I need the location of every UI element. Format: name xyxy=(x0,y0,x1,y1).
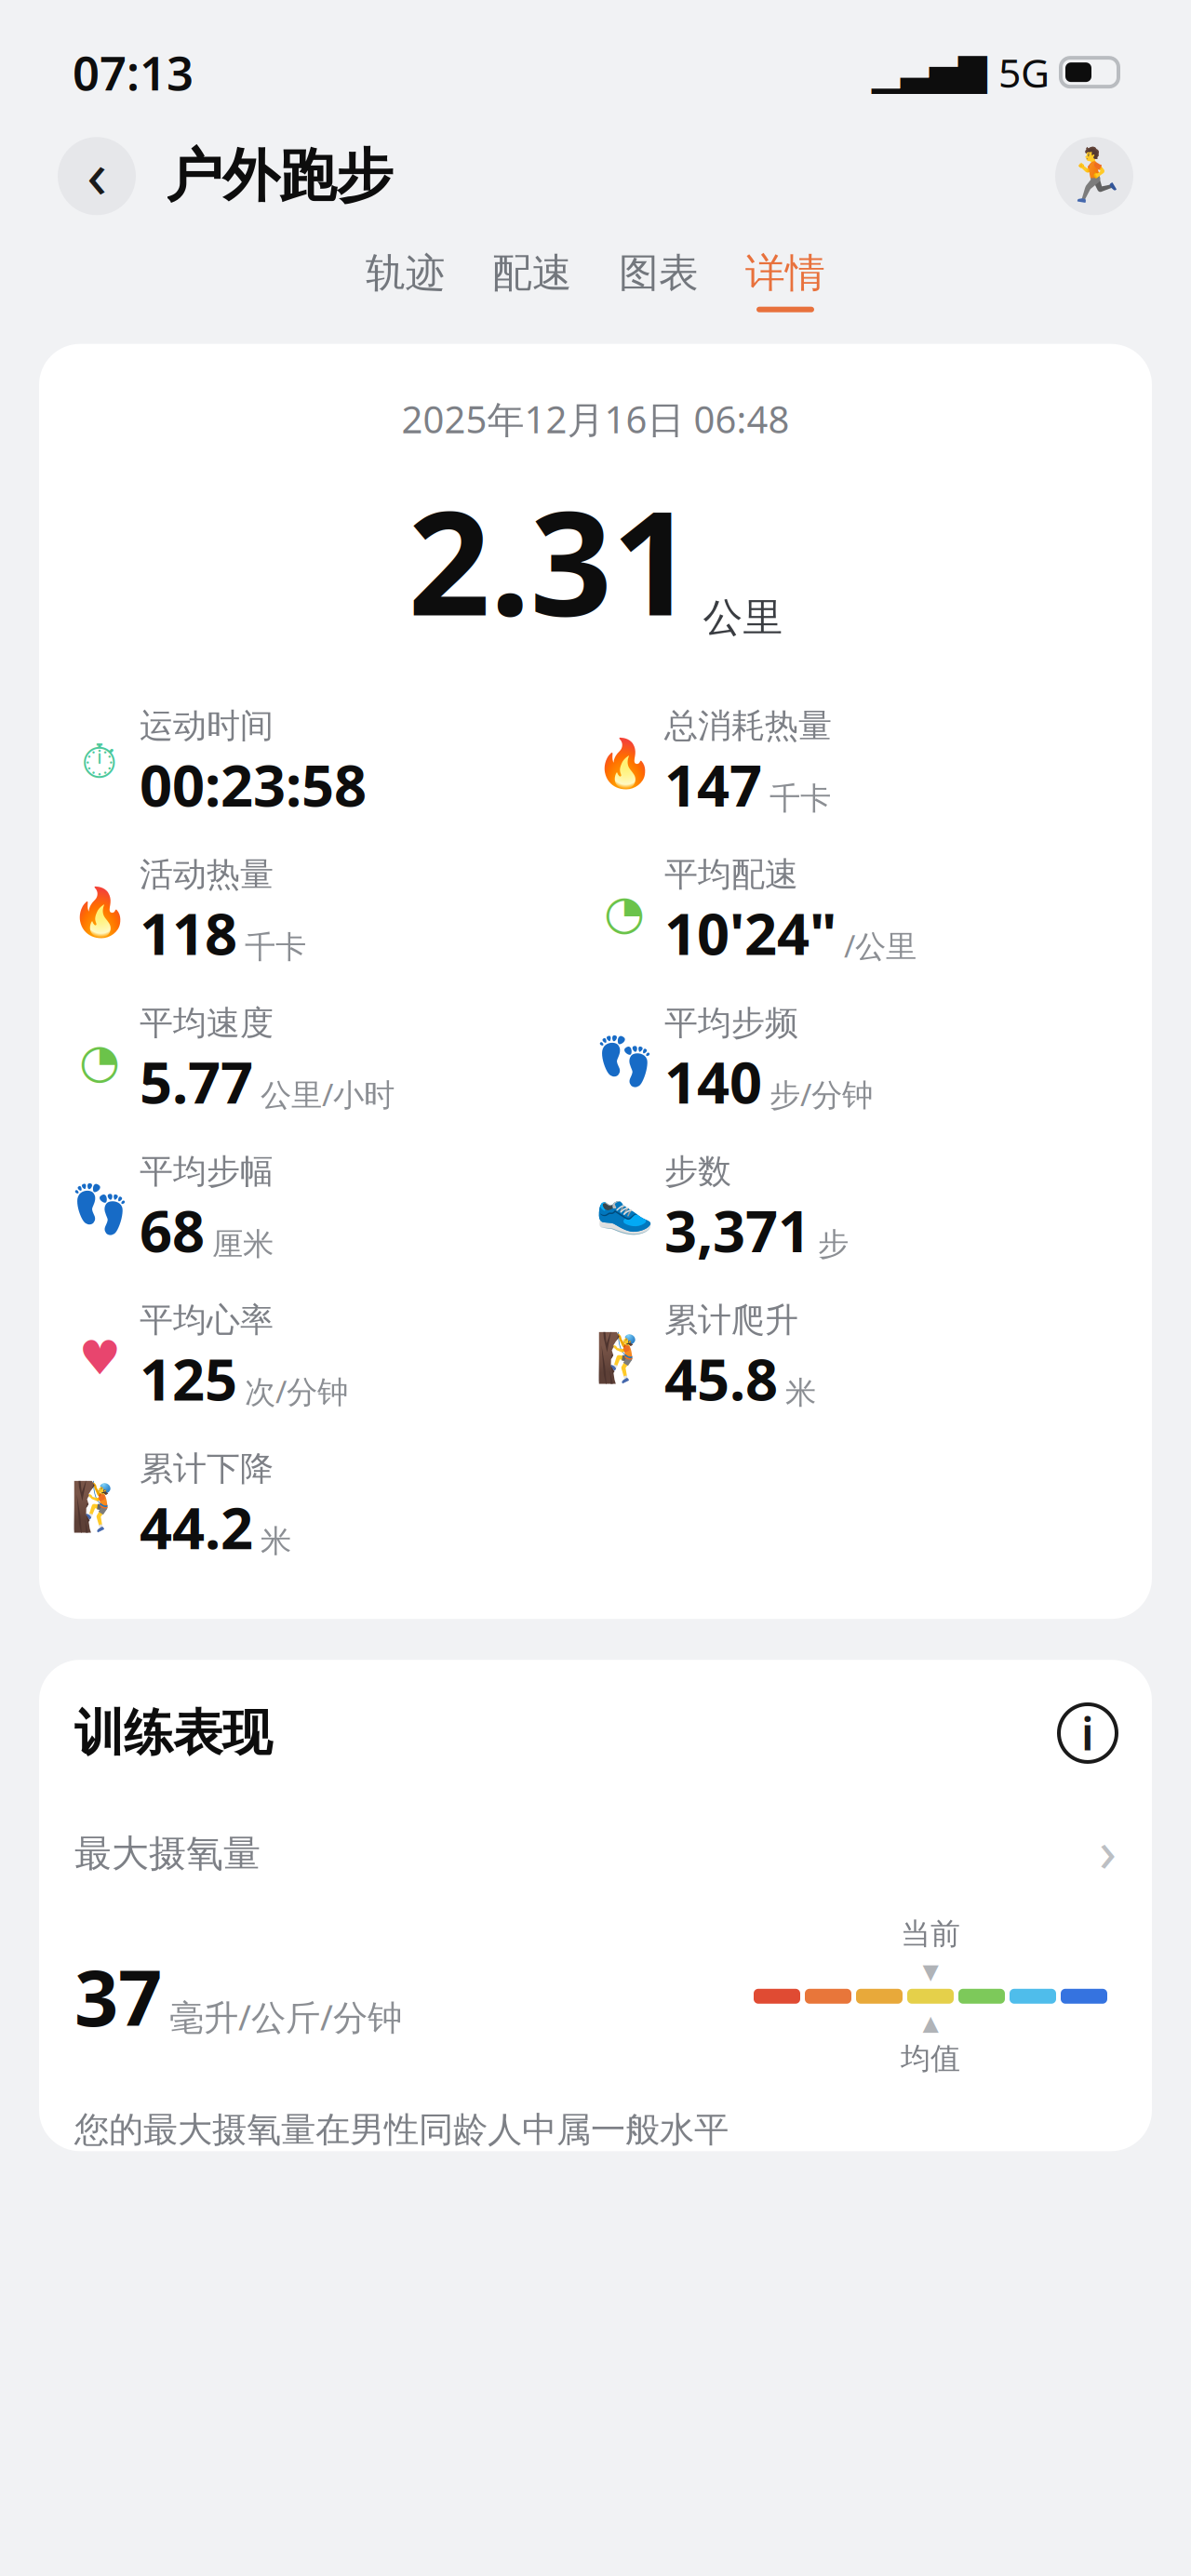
button[interactable]: 最大摄氧量 xyxy=(74,1764,1117,1895)
staticText: 37 xyxy=(74,1945,162,2047)
staticText: 图表 xyxy=(619,249,699,297)
staticText: ◔ xyxy=(604,886,645,939)
staticText: i xyxy=(1081,1703,1094,1763)
staticText: 公里/小时 xyxy=(261,1073,395,1115)
staticText: 均值 xyxy=(901,2040,960,2077)
staticText: ▁▃▅▇ xyxy=(872,51,987,93)
staticText: 10'24" xyxy=(664,895,836,971)
staticText: 毫升/公斤/分钟 xyxy=(169,1994,402,2040)
staticText: 125 xyxy=(140,1341,237,1416)
staticText: ▾ xyxy=(923,1952,938,1989)
staticText: 🧗 xyxy=(70,1480,129,1533)
staticText: 07:13 xyxy=(73,41,194,104)
staticText: 公里 xyxy=(703,593,783,642)
staticText: 千卡 xyxy=(769,779,831,818)
staticText: 5.77 xyxy=(140,1044,253,1119)
staticText: 步数 xyxy=(664,1151,731,1192)
staticText: 👣 xyxy=(70,1183,129,1236)
staticText: 累计下降 xyxy=(140,1448,274,1489)
staticText: ♥ xyxy=(79,1331,120,1385)
staticText: 最大摄氧量 xyxy=(74,1831,261,1876)
staticText: /公里 xyxy=(844,925,917,966)
staticText: ‹ xyxy=(87,128,107,217)
staticText: 运动时间 xyxy=(140,705,274,746)
button[interactable]: 说明 xyxy=(1059,1704,1117,1762)
staticText: 00:23:58 xyxy=(140,746,367,822)
staticText: 训练表现 xyxy=(74,1703,272,1764)
staticText: ◔ xyxy=(79,1034,120,1088)
staticText: 5G xyxy=(998,46,1050,99)
staticText: ⏱ xyxy=(81,741,118,787)
staticText: 44.2 xyxy=(140,1489,253,1565)
staticText: 步/分钟 xyxy=(769,1073,873,1115)
staticText: ▴ xyxy=(923,2004,938,2040)
staticText: 3,371 xyxy=(664,1192,810,1268)
staticText: 👟 xyxy=(595,1183,654,1236)
staticText: 平均配速 xyxy=(664,854,798,895)
staticText: 千卡 xyxy=(245,928,306,966)
staticText: 👣 xyxy=(595,1034,654,1088)
button[interactable]: 轨迹 xyxy=(353,243,459,318)
button[interactable]: 返回 xyxy=(58,137,136,215)
staticText: 2025年12月16日 06:48 xyxy=(401,394,790,444)
staticText: 45.8 xyxy=(664,1341,778,1416)
staticText: 轨迹 xyxy=(366,249,446,297)
button[interactable]: 运动类型 xyxy=(1055,137,1133,215)
staticText: 总消耗热量 xyxy=(664,705,832,746)
staticText: 米 xyxy=(261,1522,291,1560)
staticText: 您的最大摄氧量在男性同龄人中属一般水平 xyxy=(74,2109,729,2151)
staticText: 118 xyxy=(140,895,237,971)
staticText: 详情 xyxy=(745,249,825,297)
staticText: 厘米 xyxy=(212,1225,274,1263)
staticText: 平均步频 xyxy=(664,1002,798,1044)
staticText: 户外跑步 xyxy=(166,141,393,211)
staticText: 🔥 xyxy=(595,737,654,791)
button[interactable]: 图表 xyxy=(606,243,712,318)
staticText: 平均步幅 xyxy=(140,1151,274,1192)
button[interactable]: 详情 xyxy=(732,243,838,318)
staticText: 147 xyxy=(664,746,762,822)
staticText: 当前 xyxy=(901,1916,960,1952)
staticText: 平均速度 xyxy=(140,1002,274,1044)
staticText: 平均心率 xyxy=(140,1300,274,1341)
staticText: › xyxy=(1099,1812,1117,1888)
staticText: 2.31 xyxy=(408,464,694,655)
staticText: 🏃 xyxy=(1062,146,1127,206)
staticText: 次/分钟 xyxy=(245,1371,348,1412)
staticText: 步 xyxy=(818,1225,849,1263)
staticText: 🔥 xyxy=(70,885,129,939)
staticText: 配速 xyxy=(492,249,572,297)
staticText: 140 xyxy=(664,1044,762,1119)
staticText: 米 xyxy=(785,1374,816,1412)
button[interactable]: 配速 xyxy=(479,243,585,318)
staticText: 🧗 xyxy=(595,1331,654,1385)
staticText: 累计爬升 xyxy=(664,1300,798,1341)
staticText: 活动热量 xyxy=(140,854,274,895)
staticText: 68 xyxy=(140,1192,205,1268)
